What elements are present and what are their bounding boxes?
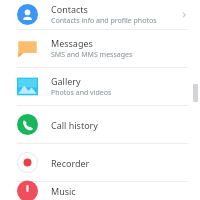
button[interactable]: Messages <box>0 30 200 67</box>
staticText: Music <box>51 185 76 197</box>
staticText: Messages <box>51 37 93 49</box>
button[interactable]: Gallery <box>0 68 200 105</box>
staticText: Gallery <box>51 75 81 87</box>
button[interactable]: Call history <box>0 106 200 143</box>
staticText: SMS and MMS messages <box>51 50 133 60</box>
staticText: Contacts info and profile photos <box>51 16 157 26</box>
staticText: Recorder <box>51 157 90 169</box>
staticText: Contacts <box>51 3 88 15</box>
staticText: Call history <box>51 119 98 131</box>
button[interactable]: Recorder <box>0 144 200 181</box>
staticText: Photos and videos <box>51 88 112 98</box>
other: Open Contacts <box>178 9 190 21</box>
button[interactable]: Contacts <box>0 0 200 29</box>
button[interactable]: Music <box>0 182 200 200</box>
